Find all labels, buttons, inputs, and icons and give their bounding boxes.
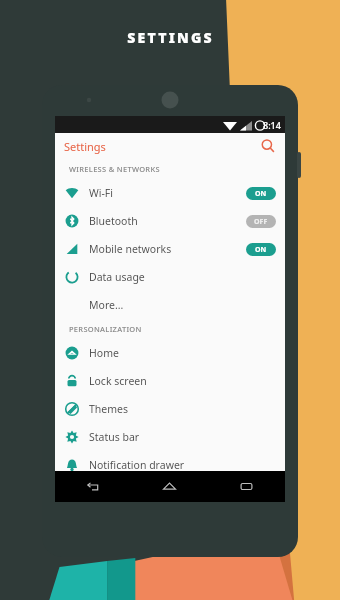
- staticText: OFF: [254, 217, 268, 227]
- button[interactable]: Back: [55, 471, 131, 502]
- button[interactable]: Data usage: [55, 263, 285, 291]
- staticText: Notification drawer: [89, 458, 185, 472]
- button[interactable]: Notification drawer: [55, 451, 285, 479]
- button[interactable]: More...: [55, 291, 285, 319]
- staticText: Home: [89, 346, 119, 360]
- button[interactable]: Wi-Fi: [55, 179, 285, 207]
- staticText: 8:14: [263, 119, 281, 131]
- staticText: More...: [89, 298, 124, 312]
- staticText: Data usage: [89, 270, 145, 284]
- staticText: WIRELESS & NETWORKS: [69, 164, 160, 174]
- button[interactable]: Recent apps: [208, 471, 285, 502]
- staticText: Lock screen: [89, 374, 147, 388]
- staticText: Bluetooth: [89, 214, 138, 228]
- staticText: ON: [255, 245, 267, 255]
- button[interactable]: Home: [131, 471, 208, 502]
- staticText: Mobile networks: [89, 242, 172, 256]
- button[interactable]: Status bar: [55, 423, 285, 451]
- staticText: PERSONALIZATION: [69, 324, 142, 334]
- staticText: SETTINGS: [127, 28, 214, 47]
- button[interactable]: Mobile networks: [55, 235, 285, 263]
- button[interactable]: ON: [246, 243, 276, 256]
- staticText: Settings: [64, 139, 106, 154]
- button[interactable]: Search: [258, 136, 278, 156]
- staticText: Wi-Fi: [89, 186, 114, 200]
- staticText: Themes: [89, 402, 129, 416]
- button[interactable]: Home: [55, 339, 285, 367]
- button[interactable]: OFF: [246, 215, 276, 228]
- staticText: Status bar: [89, 430, 140, 444]
- button[interactable]: ON: [246, 187, 276, 200]
- button[interactable]: Bluetooth: [55, 207, 285, 235]
- button[interactable]: Themes: [55, 395, 285, 423]
- staticText: ON: [255, 189, 267, 199]
- button[interactable]: Lock screen: [55, 367, 285, 395]
